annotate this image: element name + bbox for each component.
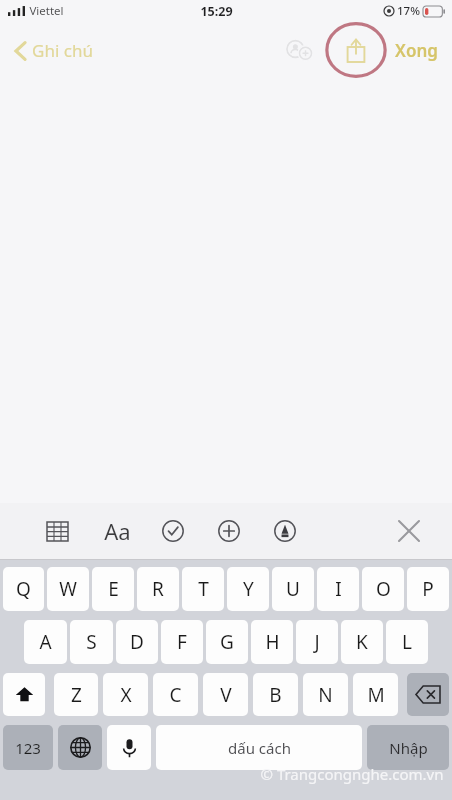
staticText: Y [243, 576, 254, 602]
staticText: Viettel [29, 3, 64, 19]
staticText: M [367, 682, 385, 708]
button[interactable]: P [407, 567, 449, 611]
button[interactable]: Change language [58, 725, 102, 770]
button[interactable]: Add attachment [212, 514, 246, 548]
button[interactable]: B [253, 673, 298, 716]
staticText: I [335, 576, 342, 602]
button[interactable]: E [92, 567, 134, 611]
button[interactable]: Table [40, 514, 74, 548]
staticText: W [59, 576, 77, 602]
staticText: Q [16, 576, 31, 602]
staticText: 17% [397, 3, 420, 19]
staticText: X [120, 682, 132, 708]
button[interactable]: W [47, 567, 89, 611]
button[interactable]: Space [156, 725, 362, 770]
staticText: G [220, 629, 234, 655]
staticText: dấu cách [228, 738, 291, 758]
button[interactable]: Y [227, 567, 269, 611]
button[interactable]: L [386, 620, 428, 664]
staticText: 15:29 [200, 3, 233, 20]
button[interactable]: Close keyboard [392, 514, 426, 548]
staticText: A [39, 629, 52, 655]
staticText: J [314, 629, 320, 655]
staticText: N [318, 682, 333, 708]
button[interactable]: Return [367, 725, 449, 770]
staticText: R [152, 576, 164, 602]
button[interactable]: Ghi chú [10, 33, 97, 68]
button[interactable]: H [251, 620, 293, 664]
staticText: Ghi chú [32, 39, 93, 62]
staticText: F [177, 629, 187, 655]
button[interactable]: Markup [268, 514, 302, 548]
button[interactable]: D [116, 620, 158, 664]
staticText: E [108, 576, 119, 602]
staticText: K [356, 629, 368, 655]
button[interactable]: Xong [389, 33, 444, 68]
staticText: U [286, 576, 300, 602]
button[interactable]: I [317, 567, 359, 611]
button[interactable]: G [206, 620, 248, 664]
button[interactable]: Shift [3, 673, 45, 716]
staticText: C [169, 682, 182, 708]
button[interactable]: Text format [100, 514, 134, 548]
button[interactable]: A [24, 620, 67, 664]
staticText: T [198, 576, 209, 602]
staticText: S [86, 629, 97, 655]
button[interactable]: U [272, 567, 314, 611]
button[interactable]: Checklist [156, 514, 190, 548]
button[interactable]: F [161, 620, 203, 664]
staticText: V [220, 682, 232, 708]
button[interactable]: Numbers [3, 725, 53, 770]
button[interactable]: Add people [279, 30, 319, 70]
button[interactable]: T [182, 567, 224, 611]
staticText: Xong [395, 39, 438, 62]
button[interactable]: J [296, 620, 338, 664]
button[interactable]: V [203, 673, 248, 716]
button[interactable]: K [341, 620, 383, 664]
staticText: B [269, 682, 282, 708]
staticText: H [265, 629, 280, 655]
button[interactable]: C [153, 673, 198, 716]
staticText: 123 [15, 738, 41, 758]
button[interactable]: O [362, 567, 404, 611]
button[interactable]: R [137, 567, 179, 611]
button[interactable]: Dictation [107, 725, 151, 770]
button[interactable]: Backspace [407, 673, 449, 716]
button[interactable]: N [303, 673, 348, 716]
staticText: P [422, 576, 434, 602]
staticText: L [402, 629, 412, 655]
staticText: Aa [104, 516, 131, 546]
staticText: Z [71, 682, 82, 708]
button[interactable]: Q [3, 567, 44, 611]
staticText: Nhập [389, 738, 428, 758]
staticText: D [130, 629, 144, 655]
button[interactable]: M [353, 673, 398, 716]
button[interactable]: Share [325, 22, 387, 78]
button[interactable]: Z [54, 673, 98, 716]
staticText: © Trangcongnghe.com.vn [260, 764, 444, 784]
button[interactable]: X [103, 673, 148, 716]
staticText: O [376, 576, 391, 602]
button[interactable]: S [70, 620, 113, 664]
